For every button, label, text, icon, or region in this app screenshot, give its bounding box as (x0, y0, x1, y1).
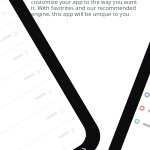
staticText: engine, this app will be unique to you. (31, 10, 131, 18)
staticText: customize your app to the way you want (31, 0, 138, 6)
staticText: it. With favorites and our recommended (31, 4, 136, 12)
